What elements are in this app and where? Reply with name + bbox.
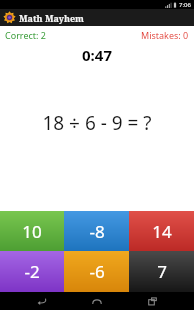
staticText: Mistakes: 0: [141, 29, 189, 41]
staticText: Math Mayhem: [19, 12, 84, 24]
button[interactable]: 10: [0, 211, 64, 251]
button[interactable]: 14: [129, 211, 194, 251]
button[interactable]: Math Mayhem app icon: [0, 9, 194, 26]
button[interactable]: -6: [64, 251, 129, 292]
staticText: -6: [89, 260, 105, 283]
button[interactable]: -8: [64, 211, 129, 251]
button[interactable]: Back: [29, 292, 55, 310]
staticText: 7: [157, 260, 167, 283]
staticText: Correct: 2: [5, 29, 46, 41]
staticText: -8: [89, 220, 105, 243]
staticText: 7:06: [179, 1, 191, 9]
staticText: -2: [24, 260, 40, 283]
other: Math Mayhem app icon: [3, 11, 16, 24]
button[interactable]: 7: [129, 251, 194, 292]
button[interactable]: -2: [0, 251, 64, 292]
staticText: 10: [22, 220, 42, 243]
staticText: 18 ÷ 6 - 9 = ?: [42, 110, 152, 136]
staticText: 14: [152, 220, 172, 243]
button[interactable]: Home: [84, 292, 110, 310]
button[interactable]: Recent apps: [139, 292, 165, 310]
staticText: 0:47: [82, 45, 112, 65]
